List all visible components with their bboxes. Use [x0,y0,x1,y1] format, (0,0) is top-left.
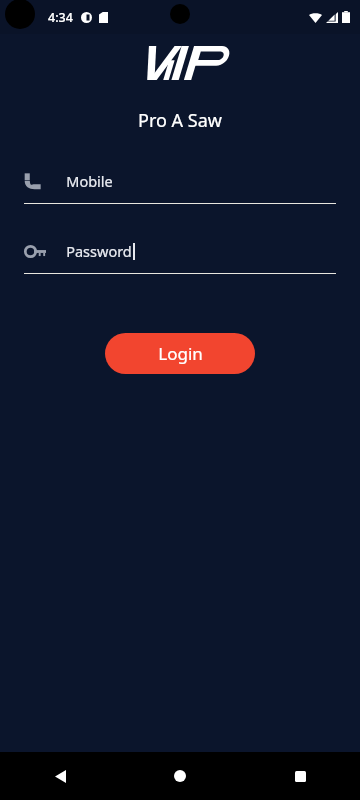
staticText: Mobile [66,171,113,191]
other: Password [24,245,46,258]
staticText: Login [158,342,203,365]
button[interactable]: Login [105,333,255,374]
button[interactable]: Password [0,236,360,274]
staticText: Password [66,241,132,261]
other: Mobile [24,173,41,190]
staticText: 4:34 [48,9,73,26]
button[interactable]: Home [120,752,240,800]
button[interactable]: Back [0,752,120,800]
other: VIP logo [137,46,223,80]
button[interactable]: Mobile [0,166,360,204]
button[interactable]: Recent apps [240,752,360,800]
staticText: Pro A Saw [138,108,222,133]
